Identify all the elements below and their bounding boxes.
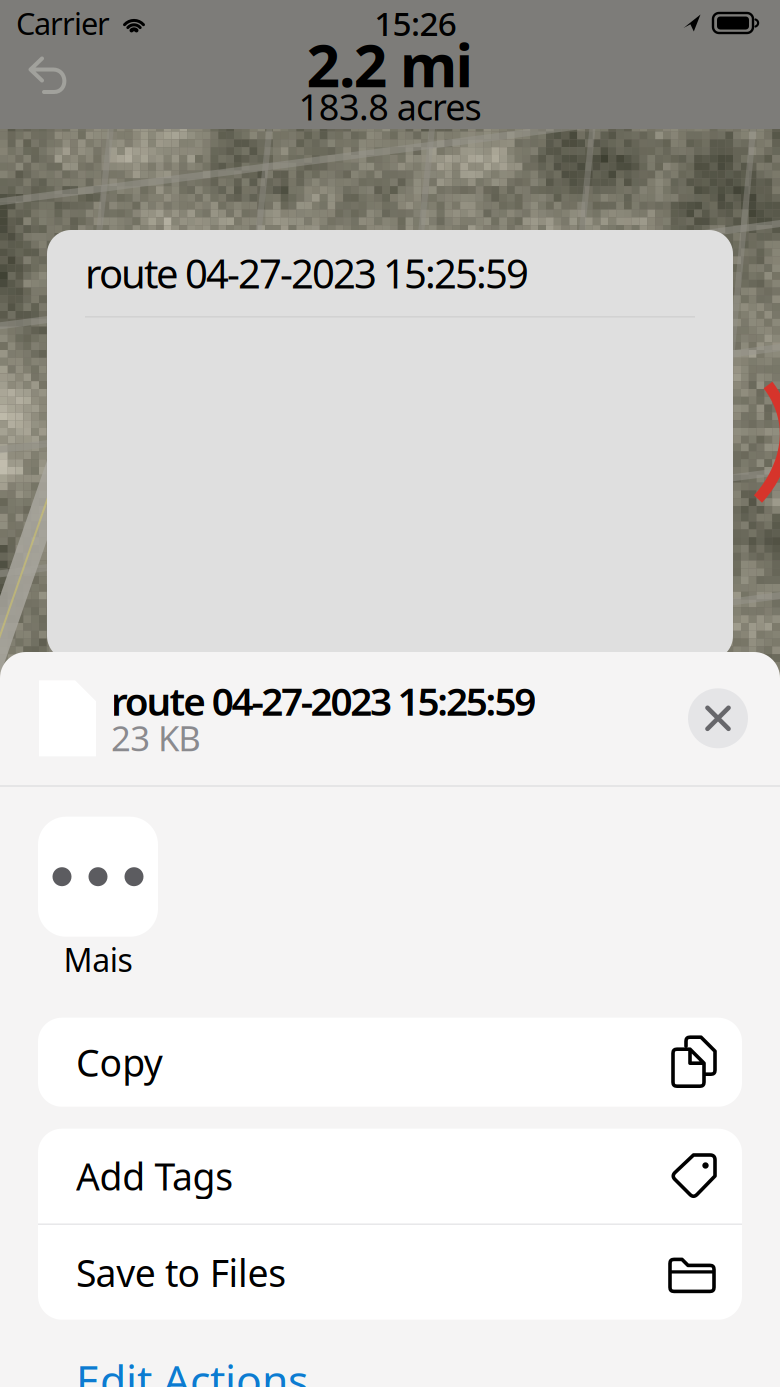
staticText: Save to Files <box>76 1248 286 1297</box>
staticText: 183.8 acres <box>298 83 481 130</box>
button[interactable]: Add Tags <box>38 1128 742 1223</box>
button[interactable]: Mais <box>38 817 158 977</box>
button[interactable]: Copy <box>38 1018 742 1107</box>
staticText: Mais <box>64 938 132 981</box>
staticText: route 04-27-2023 15:25:59 <box>111 675 536 726</box>
staticText: Copy <box>76 1037 163 1087</box>
staticText: Add Tags <box>76 1151 233 1201</box>
staticText: 23 KB <box>111 715 201 761</box>
button[interactable]: Back <box>28 56 70 95</box>
staticText: 15:26 <box>374 1 457 45</box>
staticText: 2.2 mi <box>306 25 473 103</box>
staticText: Edit Actions… <box>76 1351 342 1387</box>
button[interactable]: Save to Files <box>38 1225 742 1320</box>
staticText: Carrier <box>16 3 110 43</box>
staticText: route 04-27-2023 15:25:59 <box>85 246 529 299</box>
button[interactable]: Edit Actions… <box>76 1358 342 1387</box>
button[interactable]: Close <box>688 688 748 748</box>
